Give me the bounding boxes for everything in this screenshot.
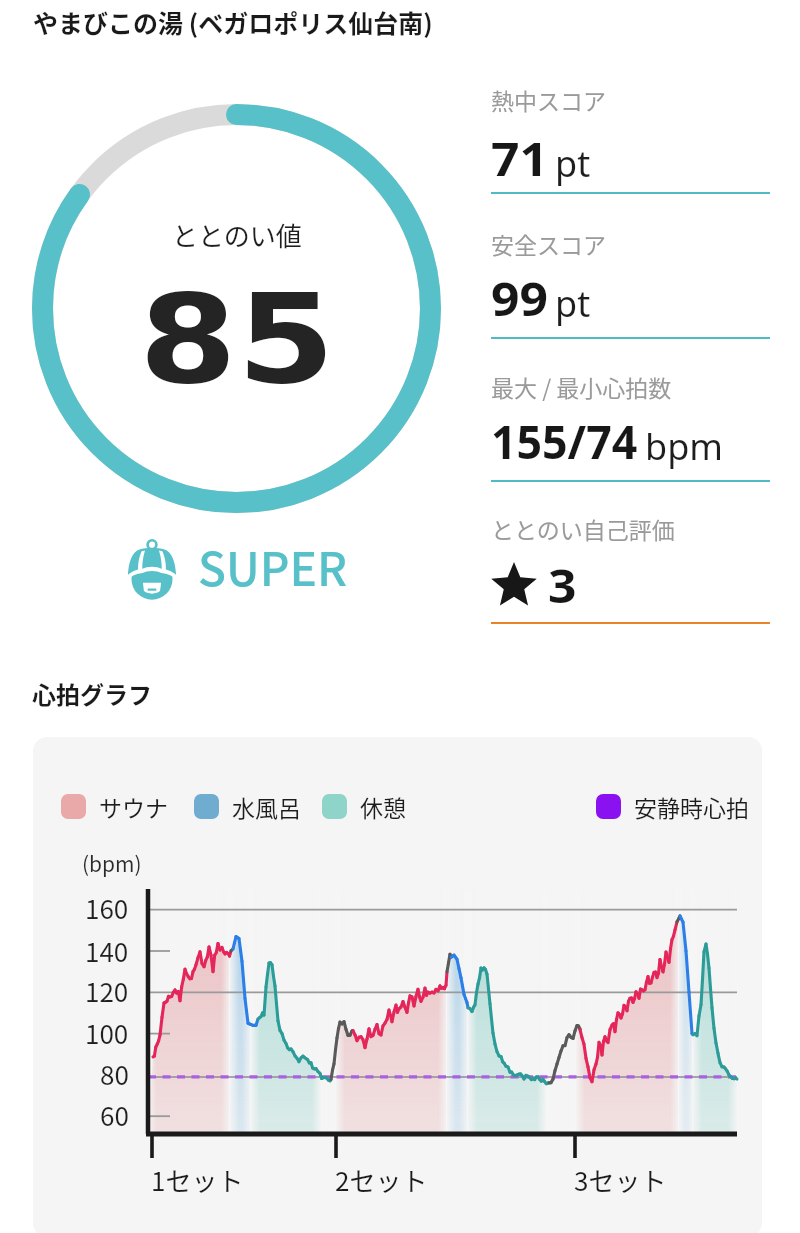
staticText: やまびこの湯 (ベガロポリス仙台南) bbox=[33, 4, 433, 40]
button[interactable]: 水風呂 bbox=[194, 790, 301, 823]
staticText: 120 bbox=[85, 972, 129, 1010]
staticText: 3セット bbox=[574, 1161, 667, 1199]
staticText: 100 bbox=[85, 1014, 129, 1052]
staticText: 155/74 bbox=[491, 409, 637, 473]
staticText: 140 bbox=[85, 932, 129, 970]
staticText: 1セット bbox=[151, 1161, 244, 1199]
staticText: 99 bbox=[491, 266, 548, 330]
staticText: (bpm) bbox=[82, 848, 142, 878]
staticText: 心拍グラフ bbox=[32, 676, 152, 711]
staticText: 水風呂 bbox=[232, 790, 301, 823]
staticText: pt bbox=[555, 139, 591, 188]
staticText: pt bbox=[555, 279, 591, 328]
button[interactable]: 休憩 bbox=[322, 790, 406, 823]
staticText: ととのい自己評価 bbox=[491, 512, 675, 545]
staticText: 休憩 bbox=[360, 790, 406, 823]
button[interactable]: SUPER bbox=[0, 533, 474, 600]
staticText: 80 bbox=[100, 1055, 129, 1093]
button[interactable]: 安静時心拍 bbox=[596, 790, 749, 823]
staticText: 3 bbox=[548, 553, 577, 617]
staticText: 安静時心拍 bbox=[634, 790, 749, 823]
staticText: 60 bbox=[100, 1096, 129, 1134]
staticText: 2セット bbox=[335, 1161, 428, 1199]
staticText: 安全スコア bbox=[491, 227, 606, 260]
staticText: bpm bbox=[645, 422, 723, 471]
staticText: 160 bbox=[85, 889, 129, 927]
staticText: サウナ bbox=[99, 790, 168, 823]
staticText: 熱中スコア bbox=[491, 83, 606, 116]
staticText: 71 bbox=[491, 126, 548, 190]
button[interactable]: サウナ bbox=[61, 790, 168, 823]
staticText: ととのい値 bbox=[172, 216, 302, 254]
staticText: SUPER bbox=[198, 533, 348, 600]
staticText: 85 bbox=[139, 268, 336, 411]
staticText: 最大 / 最小心拍数 bbox=[491, 370, 672, 403]
